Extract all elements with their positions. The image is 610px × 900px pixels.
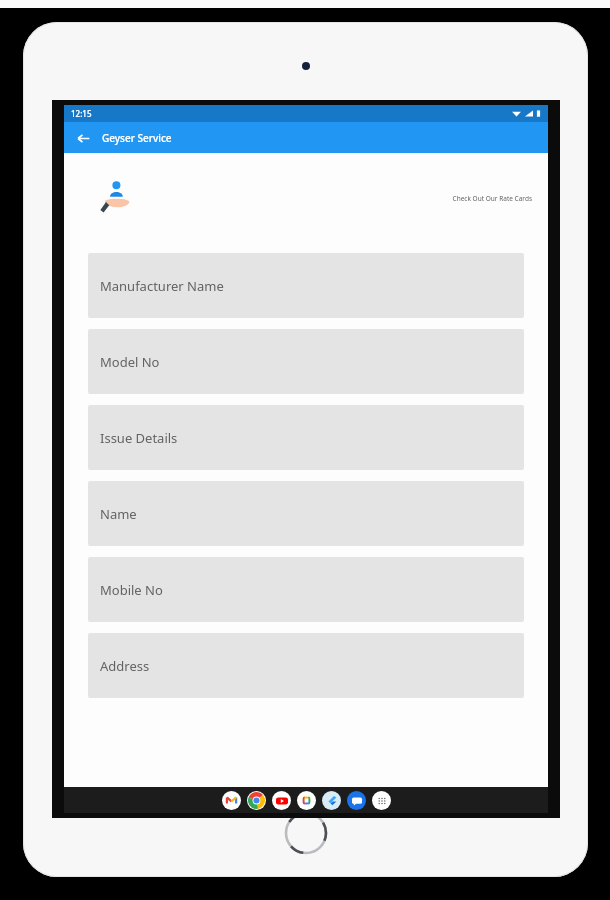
- button[interactable]: Name: [88, 481, 524, 546]
- staticText: Geyser Service: [102, 131, 172, 145]
- staticText: Address: [100, 657, 150, 675]
- staticText: Name: [100, 505, 137, 523]
- button[interactable]: App: [247, 791, 266, 810]
- button[interactable]: Mobile No: [88, 557, 524, 622]
- button[interactable]: App: [222, 791, 241, 810]
- staticText: Mobile No: [100, 581, 163, 599]
- staticText: Check Out Our Rate Cards: [452, 194, 532, 203]
- staticText: Issue Details: [100, 429, 178, 447]
- button[interactable]: Check Out Our Rate Cards: [452, 194, 532, 203]
- button[interactable]: App: [297, 791, 316, 810]
- button[interactable]: Back: [72, 127, 94, 149]
- staticText: Model No: [100, 353, 160, 371]
- button[interactable]: App: [372, 791, 391, 810]
- button[interactable]: App: [272, 791, 291, 810]
- staticText: 12:15: [71, 108, 92, 119]
- button[interactable]: App: [347, 791, 366, 810]
- staticText: Manufacturer Name: [100, 277, 224, 295]
- button[interactable]: Address: [88, 633, 524, 698]
- button[interactable]: Model No: [88, 329, 524, 394]
- button[interactable]: Issue Details: [88, 405, 524, 470]
- button[interactable]: Manufacturer Name: [88, 253, 524, 318]
- button[interactable]: App: [322, 791, 341, 810]
